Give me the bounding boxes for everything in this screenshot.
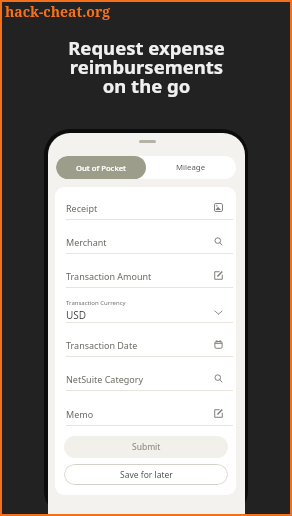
staticText: Out of Pocket <box>76 163 127 173</box>
other: Search <box>214 237 223 246</box>
staticText: Merchant <box>66 236 107 248</box>
other: Search <box>214 374 223 383</box>
staticText: NetSuite Category <box>66 373 144 385</box>
staticText: Submit <box>132 441 161 453</box>
button[interactable]: Mileage <box>146 156 236 179</box>
button[interactable]: Transaction Amount <box>66 261 233 287</box>
staticText: hack-cheat.org <box>5 2 111 21</box>
staticText: USD <box>66 308 87 322</box>
staticText: Mileage <box>176 162 206 173</box>
button[interactable]: Save for later <box>64 464 228 485</box>
other: Edit <box>214 409 223 418</box>
other: Attach receipt photo <box>214 203 223 212</box>
staticText: Memo <box>66 408 94 420</box>
staticText: Transaction Currency <box>66 299 126 307</box>
staticText: Receipt <box>66 202 98 214</box>
staticText: Request expense reimbursements on the go <box>68 35 225 99</box>
other: Pick date <box>214 340 223 349</box>
button[interactable]: Memo <box>66 399 233 425</box>
staticText: Save for later <box>120 469 173 481</box>
button[interactable]: Merchant <box>66 227 233 253</box>
staticText: Transaction Date <box>66 339 138 351</box>
button[interactable]: Receipt <box>66 193 233 219</box>
staticText: Transaction Amount <box>66 270 152 282</box>
button[interactable]: Out of Pocket <box>56 156 146 179</box>
other: Edit <box>214 271 223 280</box>
button[interactable]: NetSuite Category <box>66 364 233 390</box>
other: Expand <box>214 308 223 317</box>
button[interactable]: Transaction Date <box>66 330 233 356</box>
button[interactable]: Transaction Currency <box>66 298 233 322</box>
button[interactable]: Submit <box>64 436 228 458</box>
